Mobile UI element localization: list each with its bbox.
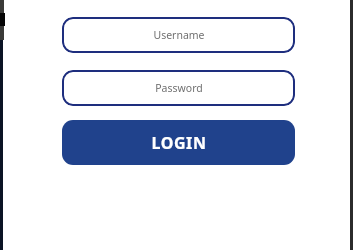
button[interactable]: Login [62, 120, 295, 165]
button[interactable]: Password [62, 70, 295, 106]
staticText: LOGIN [151, 132, 207, 154]
staticText: Username [153, 28, 205, 42]
staticText: Password [155, 81, 203, 95]
button[interactable]: Username [62, 17, 295, 53]
